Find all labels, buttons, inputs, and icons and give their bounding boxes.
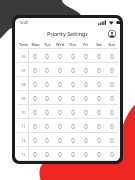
staticText: 10:40 [19, 20, 29, 25]
staticText: 0 [84, 136, 88, 144]
staticText: 0 [84, 66, 88, 74]
staticText: 0 [97, 94, 101, 102]
staticText: 0 [33, 136, 37, 144]
staticText: 0 [110, 108, 114, 116]
button[interactable]: 08 [17, 77, 118, 91]
staticText: 0 [71, 108, 75, 116]
staticText: 0 [58, 122, 62, 130]
staticText: 0 [97, 108, 101, 116]
button[interactable]: 10 [17, 105, 118, 119]
staticText: 0 [71, 122, 75, 130]
button[interactable]: 06 [17, 49, 118, 63]
staticText: 11 [21, 124, 26, 129]
staticText: 0 [110, 52, 114, 60]
staticText: 0 [110, 80, 114, 88]
staticText: 13 [21, 152, 26, 157]
staticText: 0 [71, 136, 75, 144]
staticText: 0 [45, 108, 49, 116]
staticText: 0 [84, 122, 88, 130]
staticText: 0 [58, 66, 62, 74]
staticText: 0 [97, 122, 101, 130]
staticText: 0 [84, 80, 88, 88]
staticText: 0 [97, 52, 101, 60]
staticText: 0 [97, 66, 101, 74]
button[interactable]: 11 [17, 119, 118, 133]
staticText: 0 [58, 108, 62, 116]
staticText: Thu [69, 42, 76, 47]
button[interactable]: 07 [17, 63, 118, 77]
staticText: 0 [33, 80, 37, 88]
staticText: Fri [83, 42, 88, 47]
staticText: 06 [21, 54, 26, 59]
staticText: 0 [84, 108, 88, 116]
staticText: 0 [33, 52, 37, 60]
staticText: 0 [84, 150, 88, 158]
staticText: Time [19, 42, 28, 47]
staticText: 10 [21, 110, 26, 115]
staticText: 0 [71, 66, 75, 74]
staticText: 0 [97, 136, 101, 144]
staticText: 0 [58, 52, 62, 60]
staticText: 0 [45, 80, 49, 88]
staticText: 0 [97, 150, 101, 158]
staticText: 0 [45, 150, 49, 158]
button[interactable]: 09 [17, 91, 118, 105]
staticText: Tue [44, 42, 51, 47]
staticText: 0 [33, 66, 37, 74]
staticText: Mon [31, 42, 40, 47]
staticText: 0 [58, 94, 62, 102]
staticText: 0 [84, 94, 88, 102]
staticText: 0 [45, 136, 49, 144]
staticText: 0 [71, 150, 75, 158]
staticText: 0 [45, 66, 49, 74]
staticText: Sat [96, 42, 102, 47]
staticText: 0 [45, 122, 49, 130]
staticText: 0 [33, 94, 37, 102]
staticText: Priority Settings [47, 30, 88, 37]
staticText: 0 [71, 52, 75, 60]
staticText: 09 [21, 96, 26, 101]
staticText: 0 [71, 94, 75, 102]
staticText: 0 [110, 136, 114, 144]
staticText: 12 [21, 138, 26, 143]
staticText: 0 [84, 52, 88, 60]
staticText: 0 [45, 52, 49, 60]
staticText: 0 [97, 80, 101, 88]
staticText: 0 [33, 108, 37, 116]
staticText: 0 [45, 94, 49, 102]
staticText: 0 [110, 66, 114, 74]
staticText: 0 [110, 150, 114, 158]
staticText: 0 [58, 150, 62, 158]
button[interactable]: 13 [17, 147, 118, 161]
staticText: 08 [21, 82, 26, 87]
staticText: 0 [58, 136, 62, 144]
staticText: Wed [56, 42, 64, 47]
staticText: 0 [58, 80, 62, 88]
staticText: 0 [33, 150, 37, 158]
button[interactable]: 12 [17, 133, 118, 147]
staticText: 0 [71, 80, 75, 88]
staticText: 07 [21, 68, 26, 73]
staticText: 0 [110, 94, 114, 102]
staticText: Sun [108, 42, 115, 47]
button[interactable]: Profile [108, 30, 116, 38]
staticText: 0 [110, 122, 114, 130]
staticText: 0 [33, 122, 37, 130]
